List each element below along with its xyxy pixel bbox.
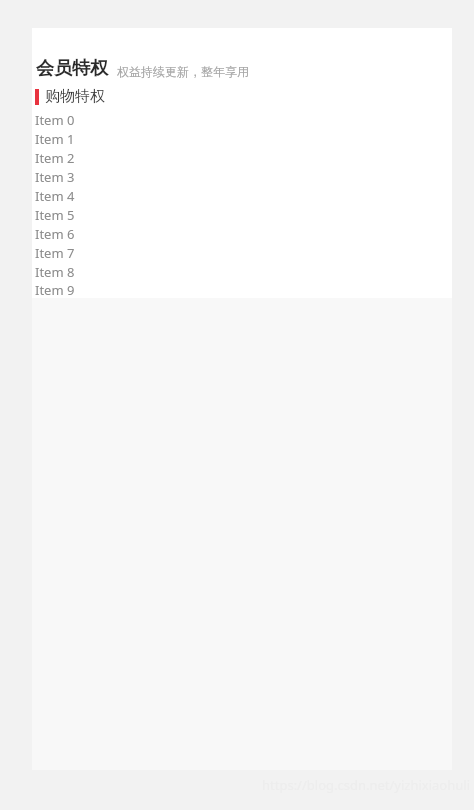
button[interactable]: Item 0	[32, 110, 452, 129]
button[interactable]: Item 6	[32, 224, 452, 243]
staticText: 会员特权	[36, 57, 108, 80]
staticText: Item 0	[35, 111, 75, 129]
staticText: 权益持续更新，整年享用	[117, 64, 249, 79]
staticText: Item 2	[35, 149, 75, 167]
button[interactable]: Item 4	[32, 186, 452, 205]
staticText: Item 1	[35, 130, 75, 148]
staticText: Item 3	[35, 168, 75, 186]
button[interactable]: Item 9	[32, 281, 452, 298]
staticText: 购物特权	[45, 87, 105, 106]
button[interactable]: Item 2	[32, 148, 452, 167]
staticText: Item 9	[35, 281, 75, 298]
staticText: Item 6	[35, 225, 75, 243]
button[interactable]: 购物特权	[32, 86, 452, 107]
button[interactable]: Item 7	[32, 243, 452, 262]
staticText: Item 4	[35, 187, 75, 205]
button[interactable]: Item 8	[32, 262, 452, 281]
button[interactable]: 会员特权	[32, 28, 452, 80]
staticText: Item 7	[35, 244, 75, 262]
button[interactable]: Item 3	[32, 167, 452, 186]
button[interactable]: Item 5	[32, 205, 452, 224]
staticText: Item 5	[35, 206, 75, 224]
button[interactable]: Item 1	[32, 129, 452, 148]
staticText: Item 8	[35, 263, 75, 281]
